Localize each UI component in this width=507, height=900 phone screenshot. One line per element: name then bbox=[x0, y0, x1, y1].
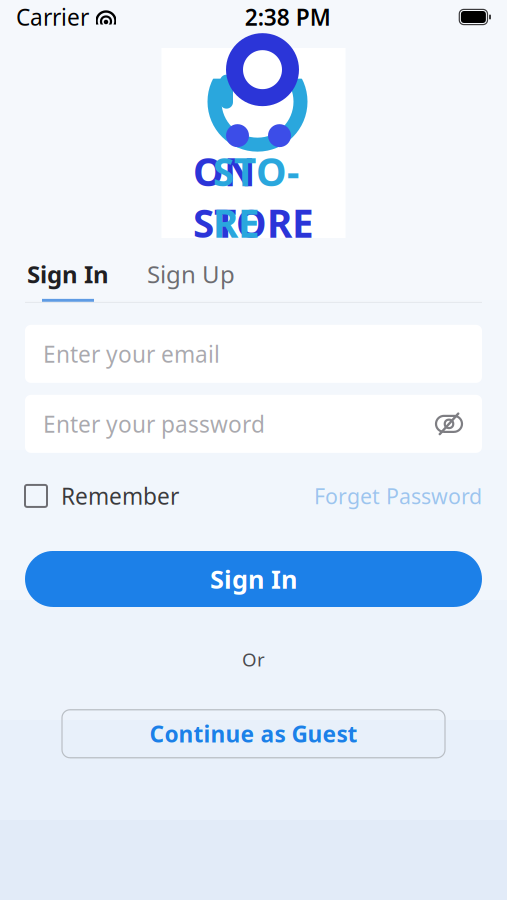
button[interactable]: Remember bbox=[25, 481, 179, 511]
staticText: Forget Password bbox=[314, 482, 482, 510]
staticText: ON STORE bbox=[193, 146, 314, 248]
button[interactable]: Enter your email bbox=[25, 325, 482, 383]
button[interactable]: Enter your password bbox=[25, 395, 482, 453]
button[interactable]: Sign In bbox=[25, 551, 482, 607]
button[interactable]: Sign Up bbox=[145, 258, 237, 302]
staticText: Or bbox=[242, 647, 265, 672]
button[interactable]: Sign In bbox=[25, 258, 111, 302]
staticText: Remember bbox=[61, 481, 179, 511]
staticText: Enter your password bbox=[43, 409, 265, 439]
button[interactable]: Forget Password bbox=[314, 482, 482, 510]
staticText: 2:38 PM bbox=[245, 2, 331, 32]
staticText: Sign In bbox=[27, 258, 109, 290]
staticText: STORE bbox=[213, 146, 299, 248]
staticText: Sign Up bbox=[147, 258, 235, 290]
staticText: Carrier bbox=[16, 2, 89, 32]
staticText: Sign In bbox=[210, 562, 297, 596]
staticText: Enter your email bbox=[43, 339, 220, 369]
staticText: Continue as Guest bbox=[149, 719, 357, 749]
button[interactable]: Continue as Guest bbox=[62, 710, 445, 758]
